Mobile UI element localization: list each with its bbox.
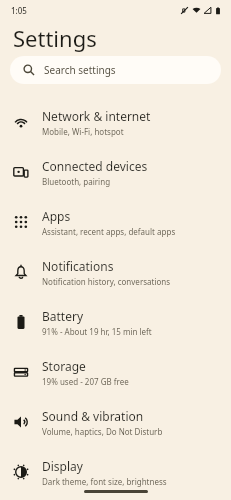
staticText: Display <box>42 458 83 474</box>
staticText: Storage <box>42 358 86 374</box>
staticText: 19% used - 207 GB free <box>42 376 129 387</box>
staticText: 91% - About 19 hr, 15 min left <box>42 326 152 337</box>
staticText: Sound & vibration <box>42 408 144 424</box>
staticText: Mobile, Wi-Fi, hotspot <box>42 126 124 137</box>
staticText: Settings <box>13 23 97 53</box>
staticText: Apps <box>42 208 71 224</box>
button[interactable]: Notifications <box>0 247 231 297</box>
staticText: Search settings <box>44 63 116 77</box>
staticText: Battery <box>42 308 84 324</box>
button[interactable]: Network & internet <box>0 97 231 147</box>
button[interactable]: Storage <box>0 347 231 397</box>
button[interactable]: Connected devices <box>0 147 231 197</box>
staticText: Network & internet <box>42 108 151 124</box>
staticText: Connected devices <box>42 158 148 174</box>
button[interactable]: Apps <box>0 197 231 247</box>
button[interactable]: Sound & vibration <box>0 397 231 447</box>
button[interactable]: Search settings <box>10 56 221 84</box>
button[interactable]: Display <box>0 447 231 497</box>
staticText: Volume, haptics, Do Not Disturb <box>42 426 163 437</box>
button[interactable]: Battery <box>0 297 231 347</box>
staticText: 1:05 <box>11 5 27 16</box>
staticText: Notifications <box>42 258 114 274</box>
staticText: Dark theme, font size, brightness <box>42 476 167 487</box>
other: Home gesture bar <box>84 490 148 493</box>
staticText: Notification history, conversations <box>42 276 171 287</box>
staticText: Bluetooth, pairing <box>42 176 111 187</box>
staticText: Assistant, recent apps, default apps <box>42 226 176 237</box>
